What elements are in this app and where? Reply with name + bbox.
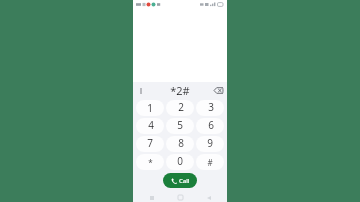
staticText: 5 [177,118,183,132]
button[interactable]: Backspace [213,85,224,96]
button[interactable]: 1 [136,100,164,116]
staticText: *2# [170,83,190,98]
staticText: # [207,157,213,168]
button[interactable]: Back [204,193,213,202]
staticText: 7 [147,136,153,150]
button[interactable]: 0 [166,154,194,170]
staticText: 4 [148,118,154,132]
button[interactable]: 6 [196,118,224,134]
staticText: 0 [177,154,183,168]
staticText: Call [179,177,190,185]
button[interactable]: Call [163,173,197,188]
button[interactable]: 2 [166,100,194,116]
button[interactable]: 8 [166,136,194,152]
button[interactable]: # [196,154,224,170]
button[interactable]: 9 [196,136,224,152]
button[interactable]: 4 [136,118,164,134]
staticText: 9 [207,136,213,150]
staticText: 2 [178,100,184,114]
button[interactable]: Recent apps [147,193,156,202]
staticText: 8 [178,136,184,150]
button[interactable]: 5 [166,118,194,134]
button[interactable]: 3 [196,100,224,116]
button[interactable]: More options [136,86,146,96]
staticText: * [148,157,153,168]
button[interactable]: 7 [136,136,164,152]
button[interactable]: Home [176,193,185,202]
staticText: 6 [208,118,214,132]
button[interactable]: * [136,154,164,170]
staticText: 1 [147,101,153,115]
staticText: 3 [208,100,214,114]
